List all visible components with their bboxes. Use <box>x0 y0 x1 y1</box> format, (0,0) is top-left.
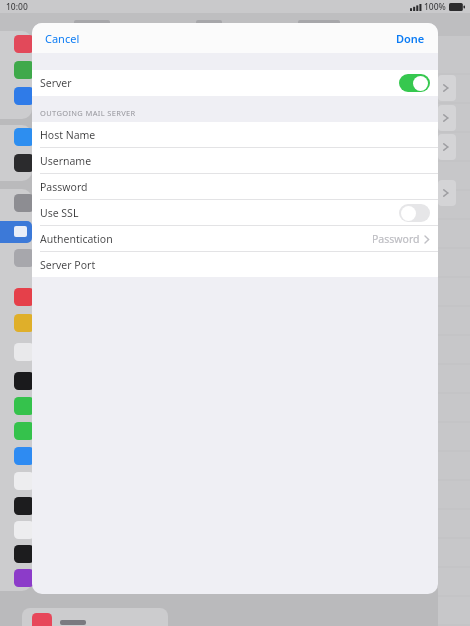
staticText: Host Name <box>40 128 96 142</box>
button[interactable]: Password <box>32 174 438 199</box>
button[interactable]: Done <box>388 26 433 51</box>
button[interactable]: Server Port <box>32 252 438 277</box>
staticText: Password <box>372 232 420 246</box>
button[interactable]: Use SSL <box>399 204 430 222</box>
button[interactable]: Authentication <box>32 226 438 251</box>
button[interactable]: Username <box>32 148 438 173</box>
staticText: OUTGOING MAIL SERVER <box>40 108 136 118</box>
staticText: 100% <box>424 1 446 13</box>
button[interactable]: Cancel <box>37 26 88 51</box>
staticText: Username <box>40 154 92 168</box>
staticText: Server <box>40 76 72 90</box>
staticText: Use SSL <box>40 206 79 220</box>
staticText: Cancel <box>45 31 80 46</box>
staticText: Server Port <box>40 258 96 272</box>
staticText: Done <box>396 31 425 46</box>
staticText: 10:00 <box>6 1 28 13</box>
staticText: Password <box>40 180 88 194</box>
staticText: Authentication <box>40 232 113 246</box>
button[interactable]: Host Name <box>32 122 438 147</box>
button[interactable]: Server <box>399 74 430 92</box>
